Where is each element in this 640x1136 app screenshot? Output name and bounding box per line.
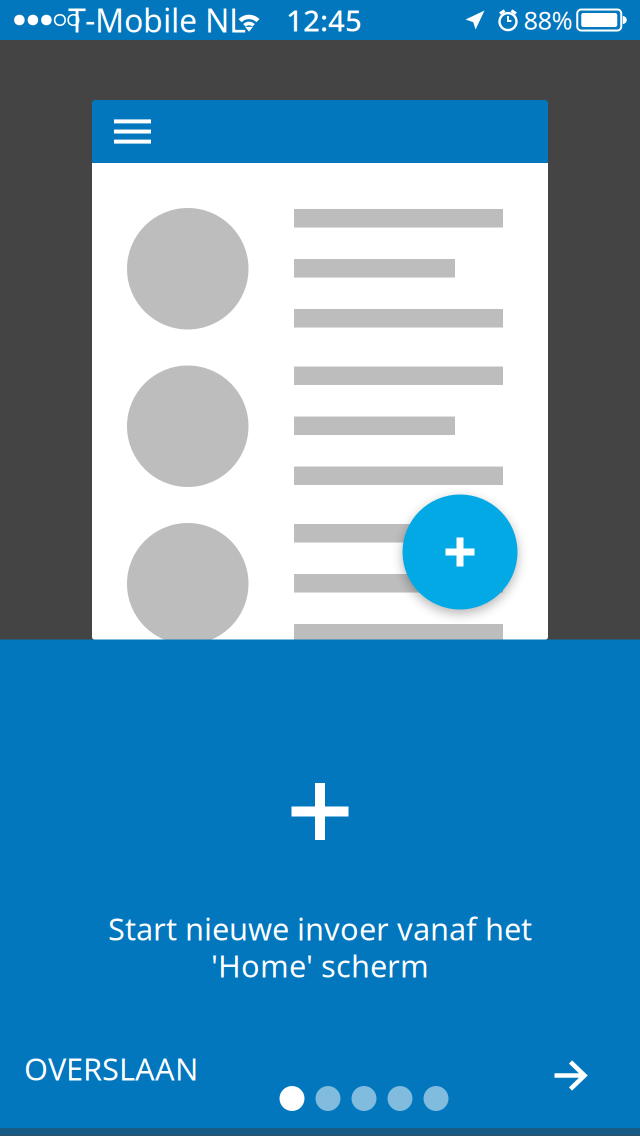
button[interactable]: OVERSLAAN <box>24 1040 204 1096</box>
button[interactable]: Page 1 of 5 <box>271 1076 456 1120</box>
button[interactable]: Next <box>538 1043 602 1107</box>
staticText: OVERSLAAN <box>24 1048 198 1089</box>
staticText: 12:45 <box>286 0 362 39</box>
staticText: T-Mobile NL <box>68 0 246 41</box>
staticText: 88% <box>523 3 572 37</box>
staticText: Start nieuwe invoer vanaf het <box>108 908 532 949</box>
staticText: 'Home' scherm <box>211 945 429 986</box>
button[interactable]: Add <box>402 494 517 609</box>
